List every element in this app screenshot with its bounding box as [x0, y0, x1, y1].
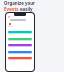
staticText: Events: [4, 6, 20, 12]
button[interactable]: [8, 31, 32, 34]
button[interactable]: [8, 44, 32, 47]
button[interactable]: [8, 38, 32, 41]
button[interactable]: Add event: [9, 23, 11, 25]
button[interactable]: [8, 57, 32, 60]
button[interactable]: [8, 51, 32, 54]
staticText: easily: [20, 6, 33, 12]
staticText: Organize your: [4, 0, 35, 6]
